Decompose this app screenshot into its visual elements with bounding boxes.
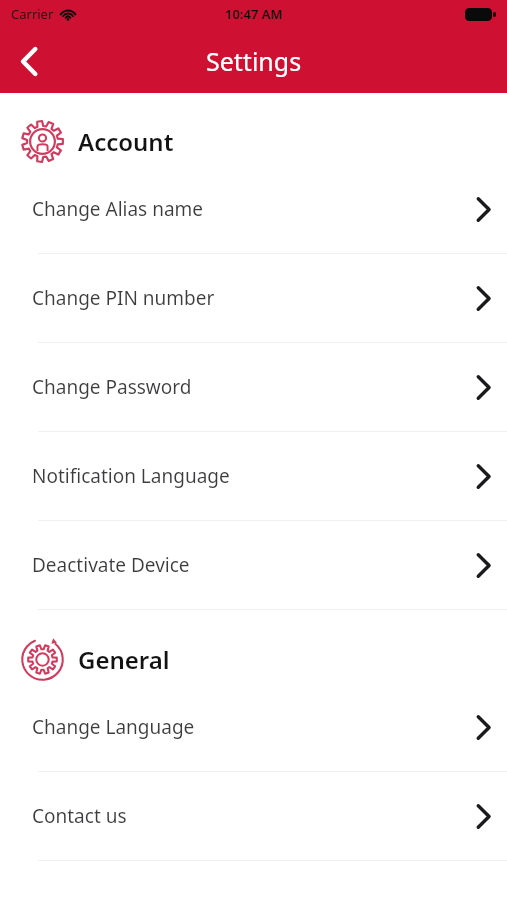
button[interactable]: Change PIN number (0, 254, 507, 342)
staticText: Deactivate Device (32, 552, 190, 578)
button[interactable]: Contact us (0, 772, 507, 860)
staticText: Change Language (32, 714, 195, 740)
button[interactable]: Change Language (0, 683, 507, 771)
button[interactable]: Back (5, 37, 53, 85)
staticText: Account (78, 125, 174, 158)
staticText: Change Alias name (32, 196, 204, 222)
button[interactable]: Change Password (0, 343, 507, 431)
staticText: Change Password (32, 374, 192, 400)
staticText: Carrier (11, 5, 54, 23)
staticText: Notification Language (32, 463, 230, 489)
staticText: General (78, 643, 170, 676)
staticText: Contact us (32, 803, 127, 829)
button[interactable]: Change Alias name (0, 165, 507, 253)
button[interactable]: Notification Language (0, 432, 507, 520)
button[interactable]: Deactivate Device (0, 521, 507, 609)
staticText: Change PIN number (32, 285, 215, 311)
staticText: 10:47 AM (225, 5, 283, 23)
staticText: Settings (206, 44, 302, 78)
